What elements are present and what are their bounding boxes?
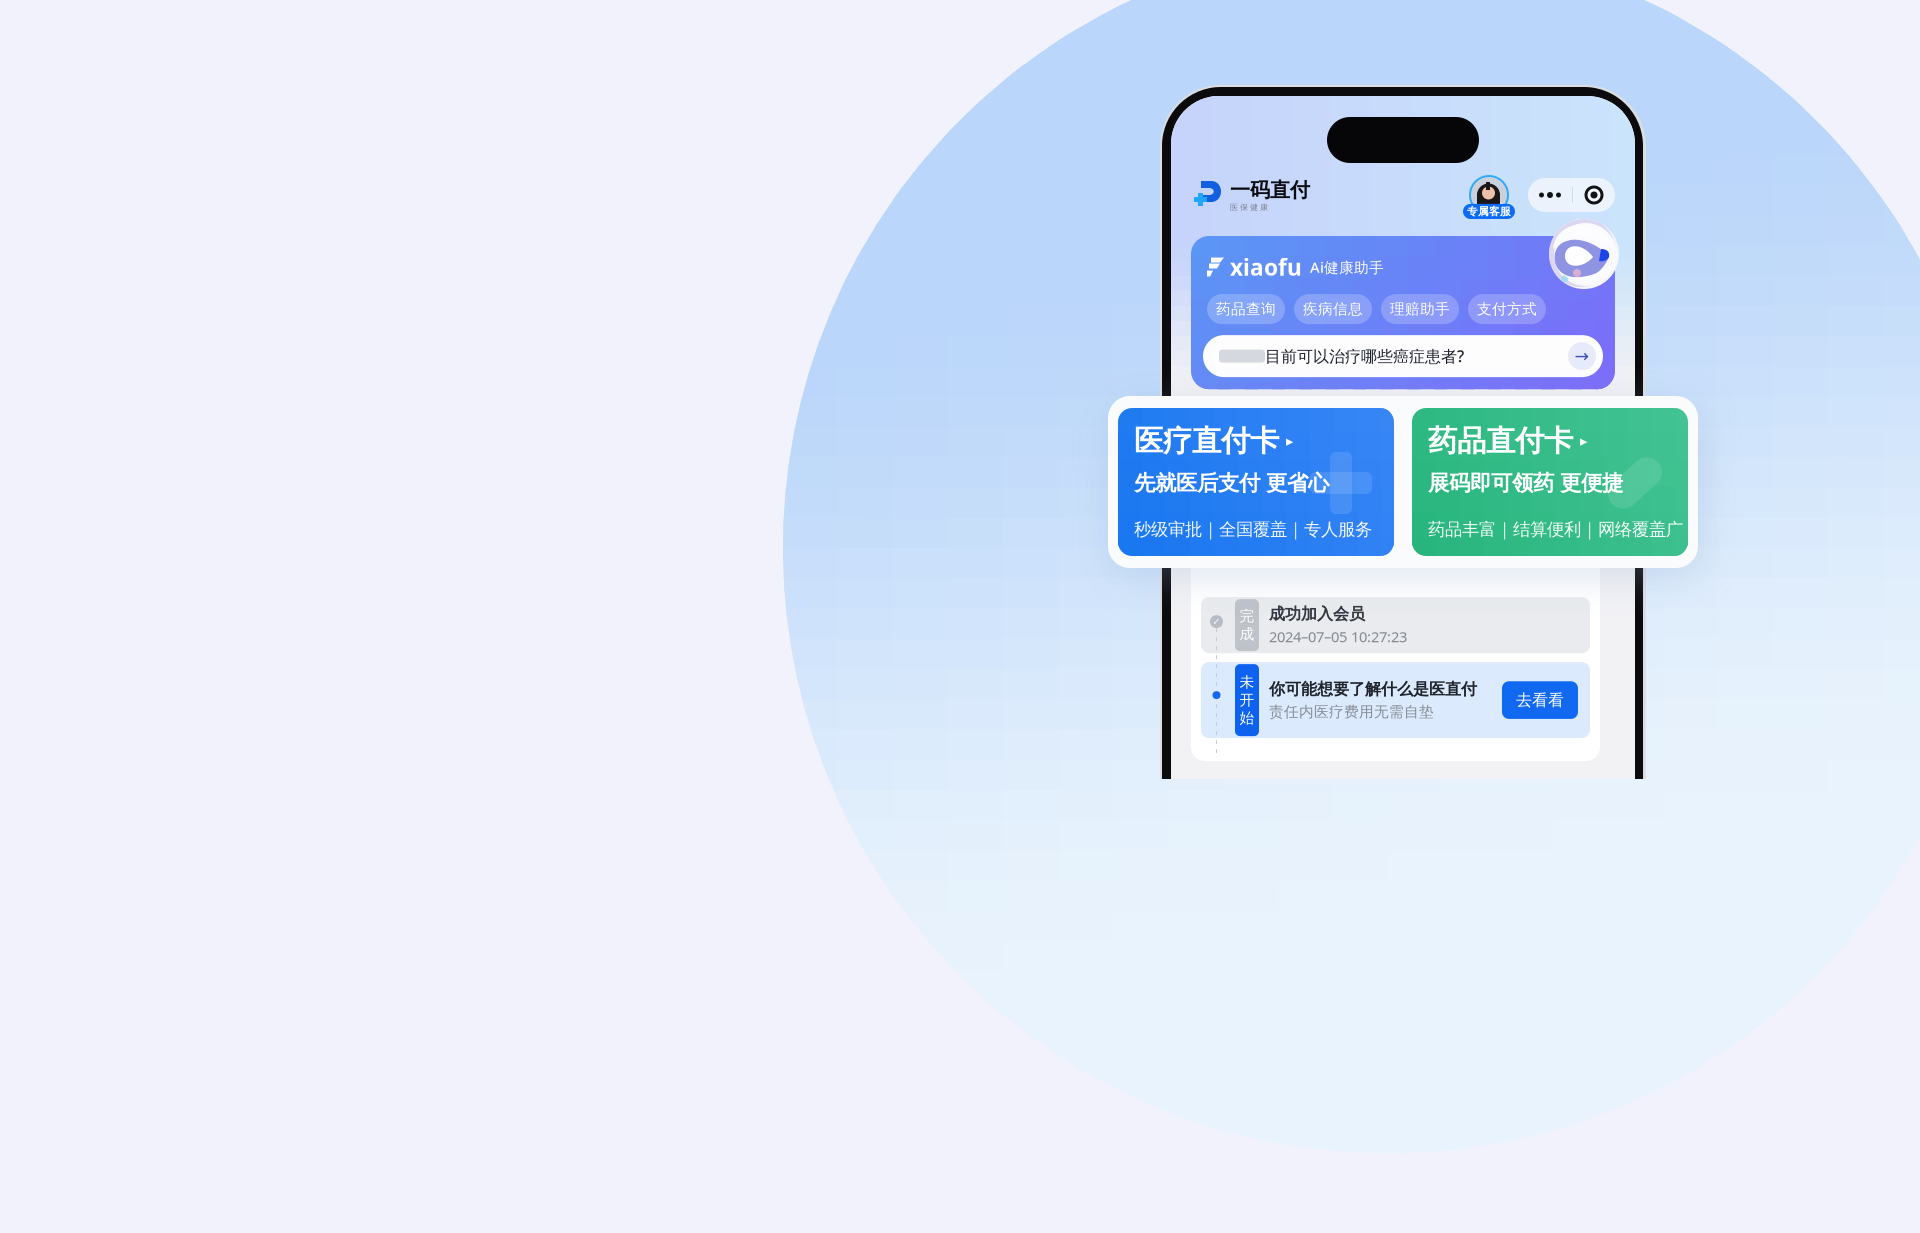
staticText: 理赔助手 bbox=[1390, 300, 1450, 318]
staticText: ▸ bbox=[1286, 433, 1293, 449]
staticText: 秒级审批｜全国覆盖｜专人服务 bbox=[1134, 519, 1372, 540]
staticText: 目前可以治疗哪些癌症患者? bbox=[1265, 345, 1464, 367]
staticText: 药品直付卡 bbox=[1428, 423, 1573, 459]
button[interactable]: 更多 bbox=[1528, 178, 1572, 212]
staticText: 成功加入会员 bbox=[1269, 604, 1365, 624]
staticText: 2024–07–05 10:27:23 bbox=[1269, 627, 1407, 646]
staticText: xiaofu bbox=[1230, 252, 1302, 282]
staticText: 你可能想要了解什么是医直付 bbox=[1269, 679, 1477, 699]
button[interactable]: 疾病信息 bbox=[1294, 294, 1372, 324]
staticText: 始 bbox=[1239, 709, 1254, 727]
staticText: 医 保 健 康 bbox=[1230, 202, 1268, 212]
staticText: 支付方式 bbox=[1477, 300, 1537, 318]
staticText: 责任内医疗费用无需自垫 bbox=[1269, 703, 1434, 721]
staticText: 专属客服 bbox=[1467, 205, 1511, 218]
staticText: 展码即可领药 更便捷 bbox=[1428, 470, 1623, 496]
staticText: 成 bbox=[1239, 625, 1254, 643]
button[interactable]: 未 bbox=[1191, 662, 1600, 738]
button[interactable]: 药品直付卡 bbox=[1412, 408, 1688, 556]
staticText: 完 bbox=[1239, 607, 1254, 625]
staticText: 医疗直付卡 bbox=[1134, 423, 1279, 459]
staticText: 药品丰富｜结算便利｜网络覆盖广 bbox=[1428, 519, 1683, 540]
button[interactable]: 理赔助手 bbox=[1381, 294, 1459, 324]
staticText: Ai健康助手 bbox=[1310, 257, 1384, 277]
button[interactable]: 目前可以治疗哪些癌症患者? bbox=[1203, 335, 1603, 377]
button[interactable]: 一码直付 bbox=[1191, 178, 1310, 212]
staticText: 先就医后支付 更省心 bbox=[1134, 470, 1329, 496]
staticText: 开 bbox=[1239, 691, 1254, 709]
staticText: 去看看 bbox=[1516, 690, 1564, 710]
button[interactable]: 关闭 bbox=[1573, 178, 1615, 212]
staticText: ✓ bbox=[1212, 616, 1220, 627]
staticText: ▸ bbox=[1580, 433, 1587, 449]
button[interactable]: 专属客服 bbox=[1464, 170, 1514, 220]
staticText: 药品查询 bbox=[1216, 300, 1276, 318]
staticText: 疾病信息 bbox=[1303, 300, 1363, 318]
button[interactable]: 支付方式 bbox=[1468, 294, 1546, 324]
staticText: 一码直付 bbox=[1230, 178, 1310, 202]
staticText: → bbox=[1574, 346, 1589, 366]
button[interactable]: 药品查询 bbox=[1207, 294, 1285, 324]
button[interactable]: 医疗直付卡 bbox=[1118, 408, 1394, 556]
staticText: 未 bbox=[1239, 673, 1254, 691]
